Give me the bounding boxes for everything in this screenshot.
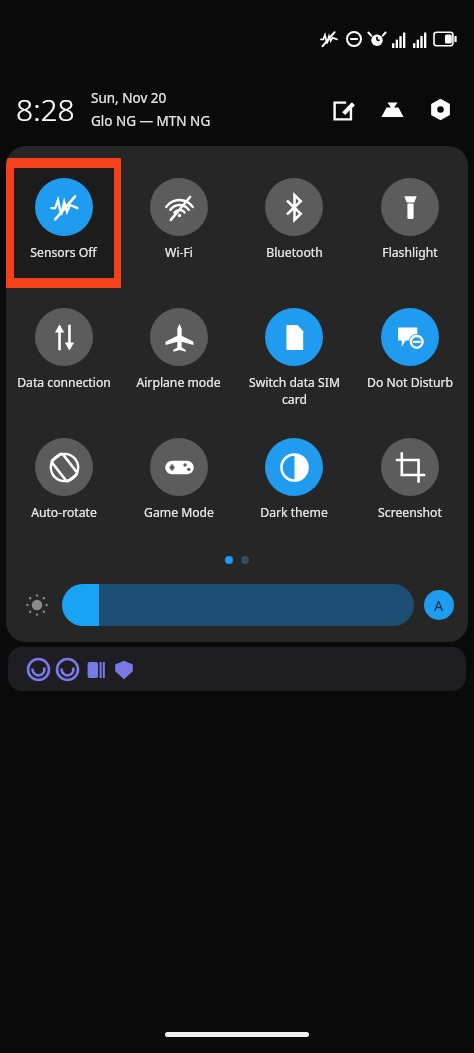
button[interactable]: Screenshot bbox=[374, 91, 410, 127]
staticText: Flashlight bbox=[382, 244, 438, 261]
button[interactable] bbox=[8, 647, 466, 691]
button[interactable]: Sensors Off bbox=[6, 154, 121, 284]
button[interactable]: Settings bbox=[422, 91, 458, 127]
staticText: Dark theme bbox=[260, 504, 328, 521]
staticText: Auto-rotate bbox=[31, 504, 97, 521]
button[interactable]: Wi-Fi bbox=[121, 154, 236, 284]
staticText: Game Mode bbox=[144, 504, 214, 521]
staticText: A bbox=[434, 596, 444, 615]
button[interactable]: Auto brightness bbox=[424, 590, 454, 620]
staticText: Switch data SIM card bbox=[249, 374, 340, 408]
button[interactable]: Brightness bbox=[20, 588, 54, 622]
button[interactable]: Dark theme bbox=[236, 414, 352, 544]
button[interactable]: Game Mode bbox=[121, 414, 236, 544]
button[interactable]: Screenshot bbox=[352, 414, 468, 544]
staticText: Bluetooth bbox=[266, 244, 323, 261]
button[interactable]: Do Not Disturb bbox=[352, 284, 468, 414]
button[interactable]: Flashlight bbox=[352, 154, 468, 284]
button[interactable]: Edit bbox=[326, 91, 362, 127]
staticText: Data connection bbox=[17, 374, 111, 391]
staticText: Screenshot bbox=[378, 504, 442, 521]
button[interactable] bbox=[62, 584, 414, 626]
button[interactable]: Data connection bbox=[6, 284, 121, 414]
button[interactable]: Airplane mode bbox=[121, 284, 236, 414]
button[interactable]: Bluetooth bbox=[236, 154, 352, 284]
staticText: 8:28 bbox=[16, 89, 75, 130]
staticText: Airplane mode bbox=[136, 374, 221, 391]
staticText: Wi-Fi bbox=[165, 244, 193, 261]
staticText: Sensors Off bbox=[30, 244, 97, 261]
staticText: Glo NG — MTN NG bbox=[91, 112, 211, 130]
button[interactable]: Switch data SIM card bbox=[236, 284, 352, 414]
staticText: Do Not Disturb bbox=[367, 374, 453, 391]
button[interactable]: Auto-rotate bbox=[6, 414, 121, 544]
staticText: Sun, Nov 20 bbox=[91, 89, 167, 107]
